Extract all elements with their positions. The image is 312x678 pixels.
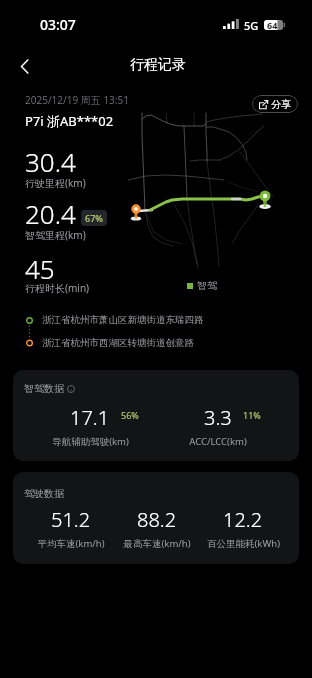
staticText: 导航辅助驾驶(km) [52,435,129,448]
button[interactable]: 智驾数据 [13,370,299,461]
staticText: 64 [267,19,278,31]
staticText: 浙江省杭州市西湖区转塘街道创意路 [42,337,194,349]
staticText: 45 [25,251,55,286]
staticText: 行程记录 [130,56,186,74]
staticText: 5G [244,18,259,33]
staticText: 平均车速(km/h) [37,537,105,550]
staticText: 03:07 [40,15,76,34]
button[interactable]: 分享 [252,95,298,113]
staticText: 51.2 [51,506,91,533]
staticText: ACC/LCC(km) [189,435,247,448]
staticText: 行驶里程(km) [25,176,86,190]
staticText: P7i 浙AB***02 [25,112,114,130]
staticText: 分享 [271,98,291,111]
staticText: 56% [121,409,139,421]
staticText: 百公里能耗(kWh) [207,537,280,550]
staticText: 20.4 [25,196,76,231]
staticText: 智驾数据 [24,382,64,395]
staticText: 行程时长(min) [25,281,90,295]
staticText: 最高车速(km/h) [123,537,191,550]
staticText: 驾驶数据 [24,487,64,500]
staticText: 浙江省杭州市萧山区新塘街道东瑞四路 [42,314,204,326]
staticText: 17.1 [70,404,110,431]
staticText: 11% [243,409,261,421]
staticText: 智驾 [197,279,217,292]
staticText: 88.2 [137,506,177,533]
button[interactable]: Back [8,50,40,82]
staticText: 3.3 [204,404,232,431]
staticText: 2025/12/19 周五 13:51 [25,93,129,107]
staticText: 智驾里程(km) [25,228,86,242]
staticText: 12.2 [223,506,263,533]
staticText: 67% [85,212,103,224]
button[interactable]: 驾驶数据 [13,472,299,564]
staticText: 30.4 [25,144,76,179]
